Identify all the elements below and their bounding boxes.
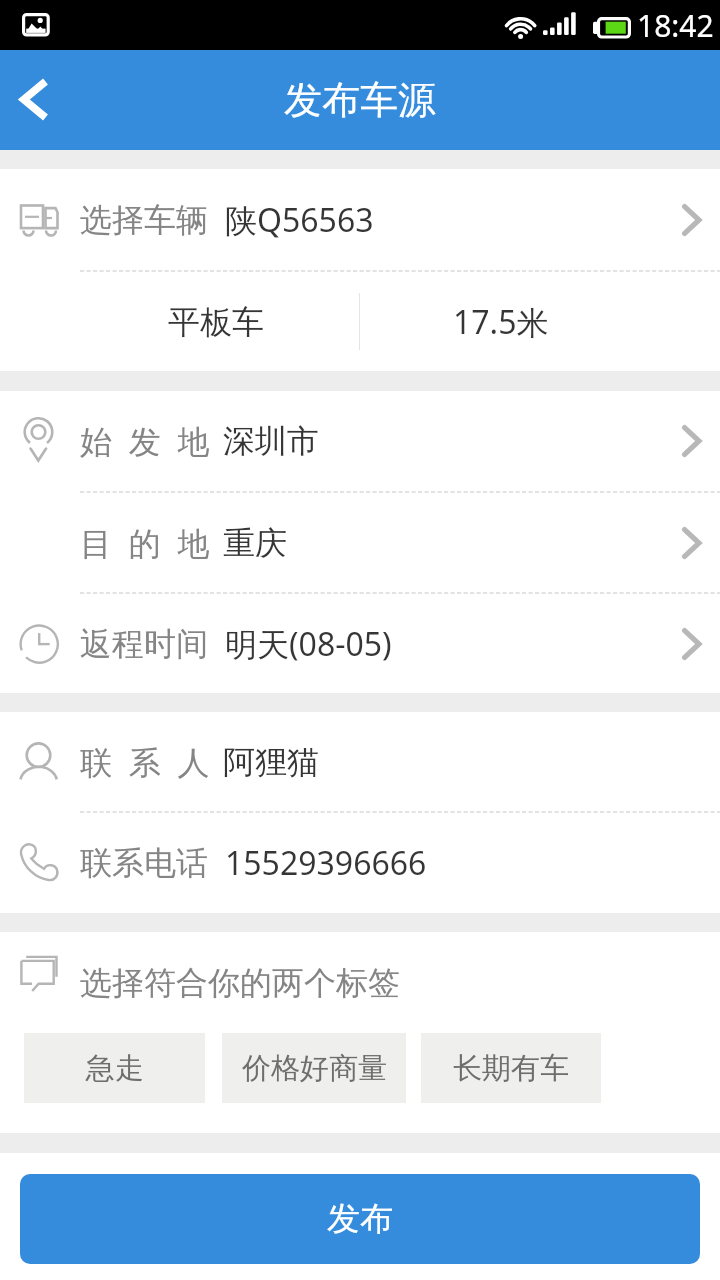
staticText: 价格好商量 xyxy=(242,1050,387,1087)
staticText: 平板车 xyxy=(168,302,264,342)
button[interactable]: 联 系 人 xyxy=(0,712,720,811)
staticText: 始 发 地 xyxy=(80,419,214,463)
staticText: 明天(08-05) xyxy=(225,622,392,666)
staticText: 17.5米 xyxy=(453,300,549,344)
staticText: 陕Q56563 xyxy=(225,198,374,242)
staticText: 深圳市 xyxy=(223,421,319,461)
button[interactable]: 价格好商量 xyxy=(222,1033,406,1103)
staticText: 目 的 地 xyxy=(80,521,214,565)
staticText: 18:42 xyxy=(637,5,714,46)
staticText: 返程时间 xyxy=(80,624,208,664)
staticText: 发布 xyxy=(327,1198,393,1240)
button[interactable]: 长期有车 xyxy=(421,1033,601,1103)
button[interactable]: 联系电话 xyxy=(0,813,720,913)
button[interactable]: 发布 xyxy=(20,1174,700,1264)
button[interactable]: 选择车辆 xyxy=(0,169,720,270)
staticText: 15529396666 xyxy=(225,841,427,885)
staticText: 急走 xyxy=(86,1050,144,1087)
staticText: 重庆 xyxy=(223,523,287,563)
button[interactable]: 目 的 地 xyxy=(0,493,720,592)
button[interactable]: 始 发 地 xyxy=(0,391,720,491)
button[interactable]: Back xyxy=(0,50,86,150)
staticText: 选择车辆 xyxy=(80,200,208,240)
staticText: 发布车源 xyxy=(284,76,436,124)
staticText: 阿狸猫 xyxy=(223,742,319,782)
staticText: 联系电话 xyxy=(80,843,208,883)
staticText: 联 系 人 xyxy=(80,740,214,784)
button[interactable]: 急走 xyxy=(24,1033,205,1103)
staticText: 长期有车 xyxy=(453,1050,569,1087)
staticText: 选择符合你的两个标签 xyxy=(80,963,400,1003)
button[interactable]: 返程时间 xyxy=(0,594,720,693)
